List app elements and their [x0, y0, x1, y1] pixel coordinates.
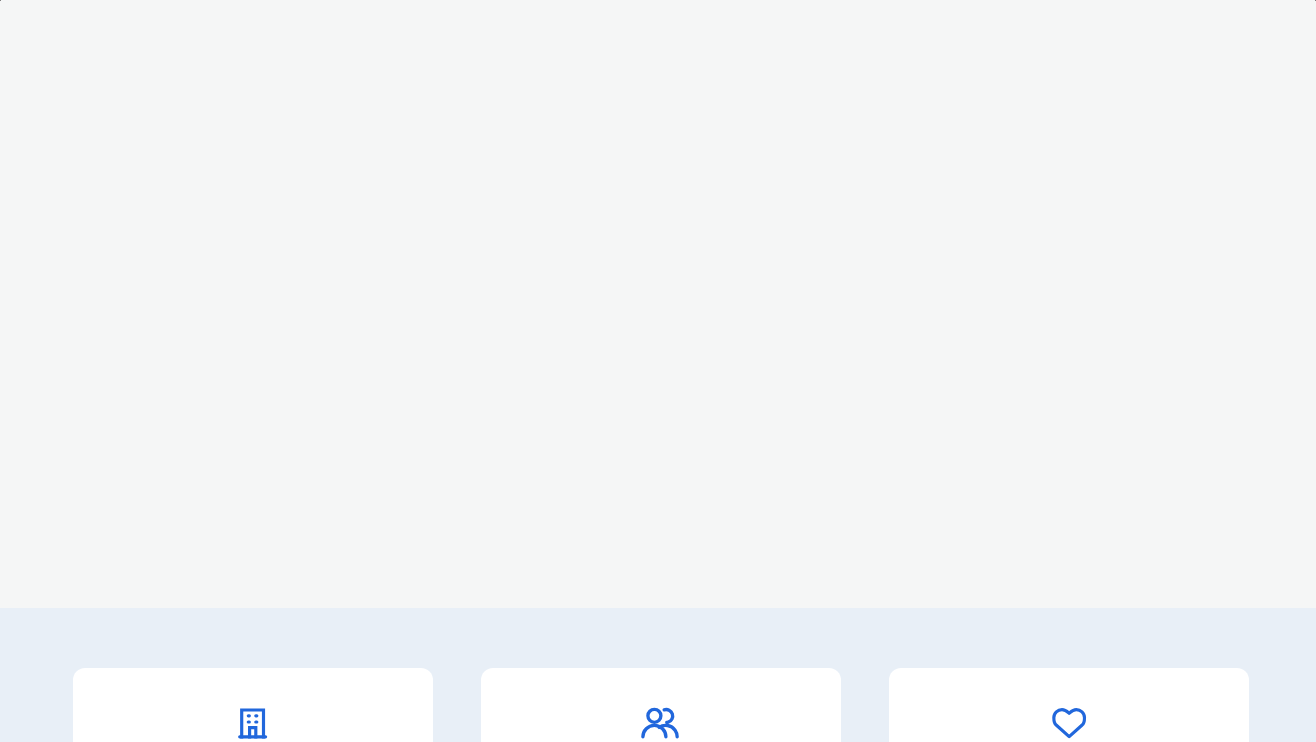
button[interactable]: Favourites	[889, 668, 1249, 742]
button[interactable]: Company	[73, 668, 433, 742]
button[interactable]: Team	[481, 668, 841, 742]
